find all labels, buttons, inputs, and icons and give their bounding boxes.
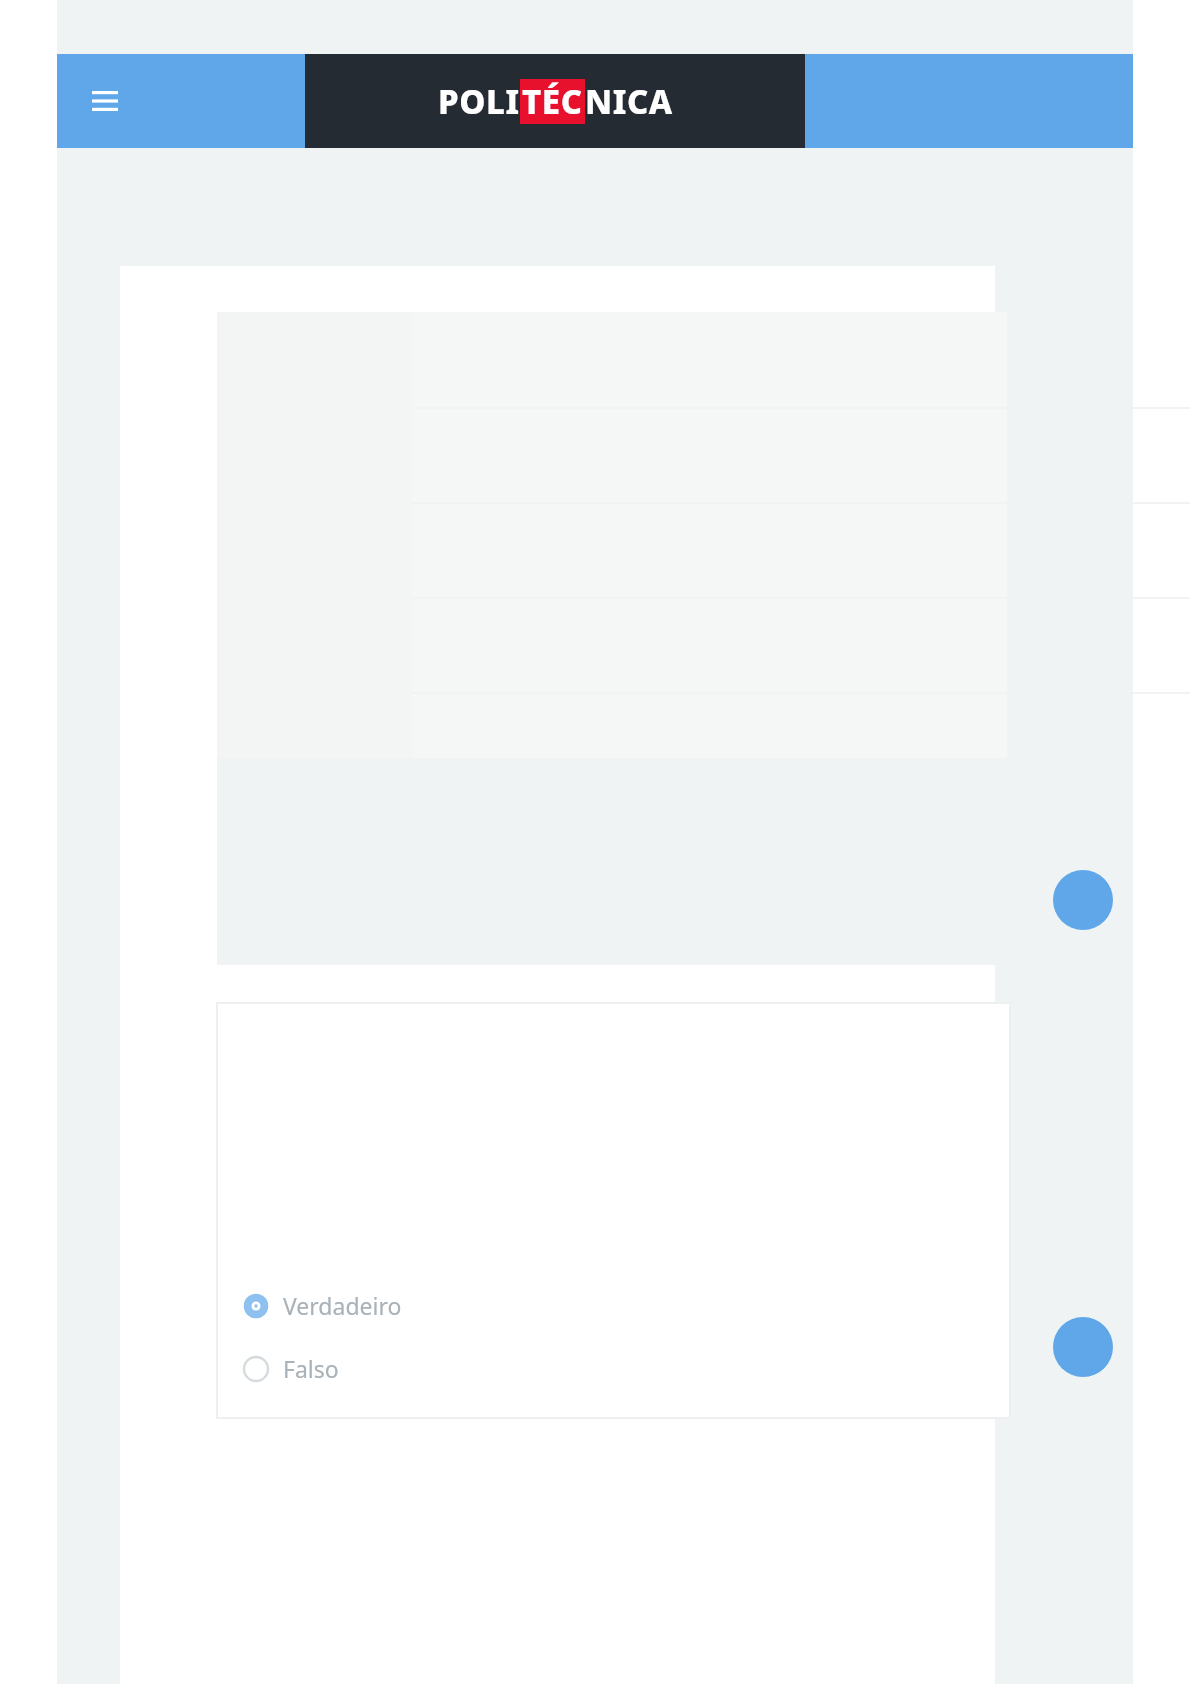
staticText: TÉC xyxy=(522,79,583,124)
staticText: Falso xyxy=(283,1353,339,1384)
button[interactable]: Verdadeiro xyxy=(239,1286,404,1325)
button[interactable]: Falso xyxy=(239,1349,341,1388)
button[interactable]: Next question xyxy=(1053,870,1113,930)
button[interactable]: Open navigation menu xyxy=(57,54,152,148)
button[interactable]: POLI xyxy=(305,54,805,148)
staticText: POLI xyxy=(438,79,520,124)
button[interactable]: Confirm answer xyxy=(1053,1317,1113,1377)
staticText: NICA xyxy=(585,79,673,124)
staticText: Verdadeiro xyxy=(283,1290,402,1321)
